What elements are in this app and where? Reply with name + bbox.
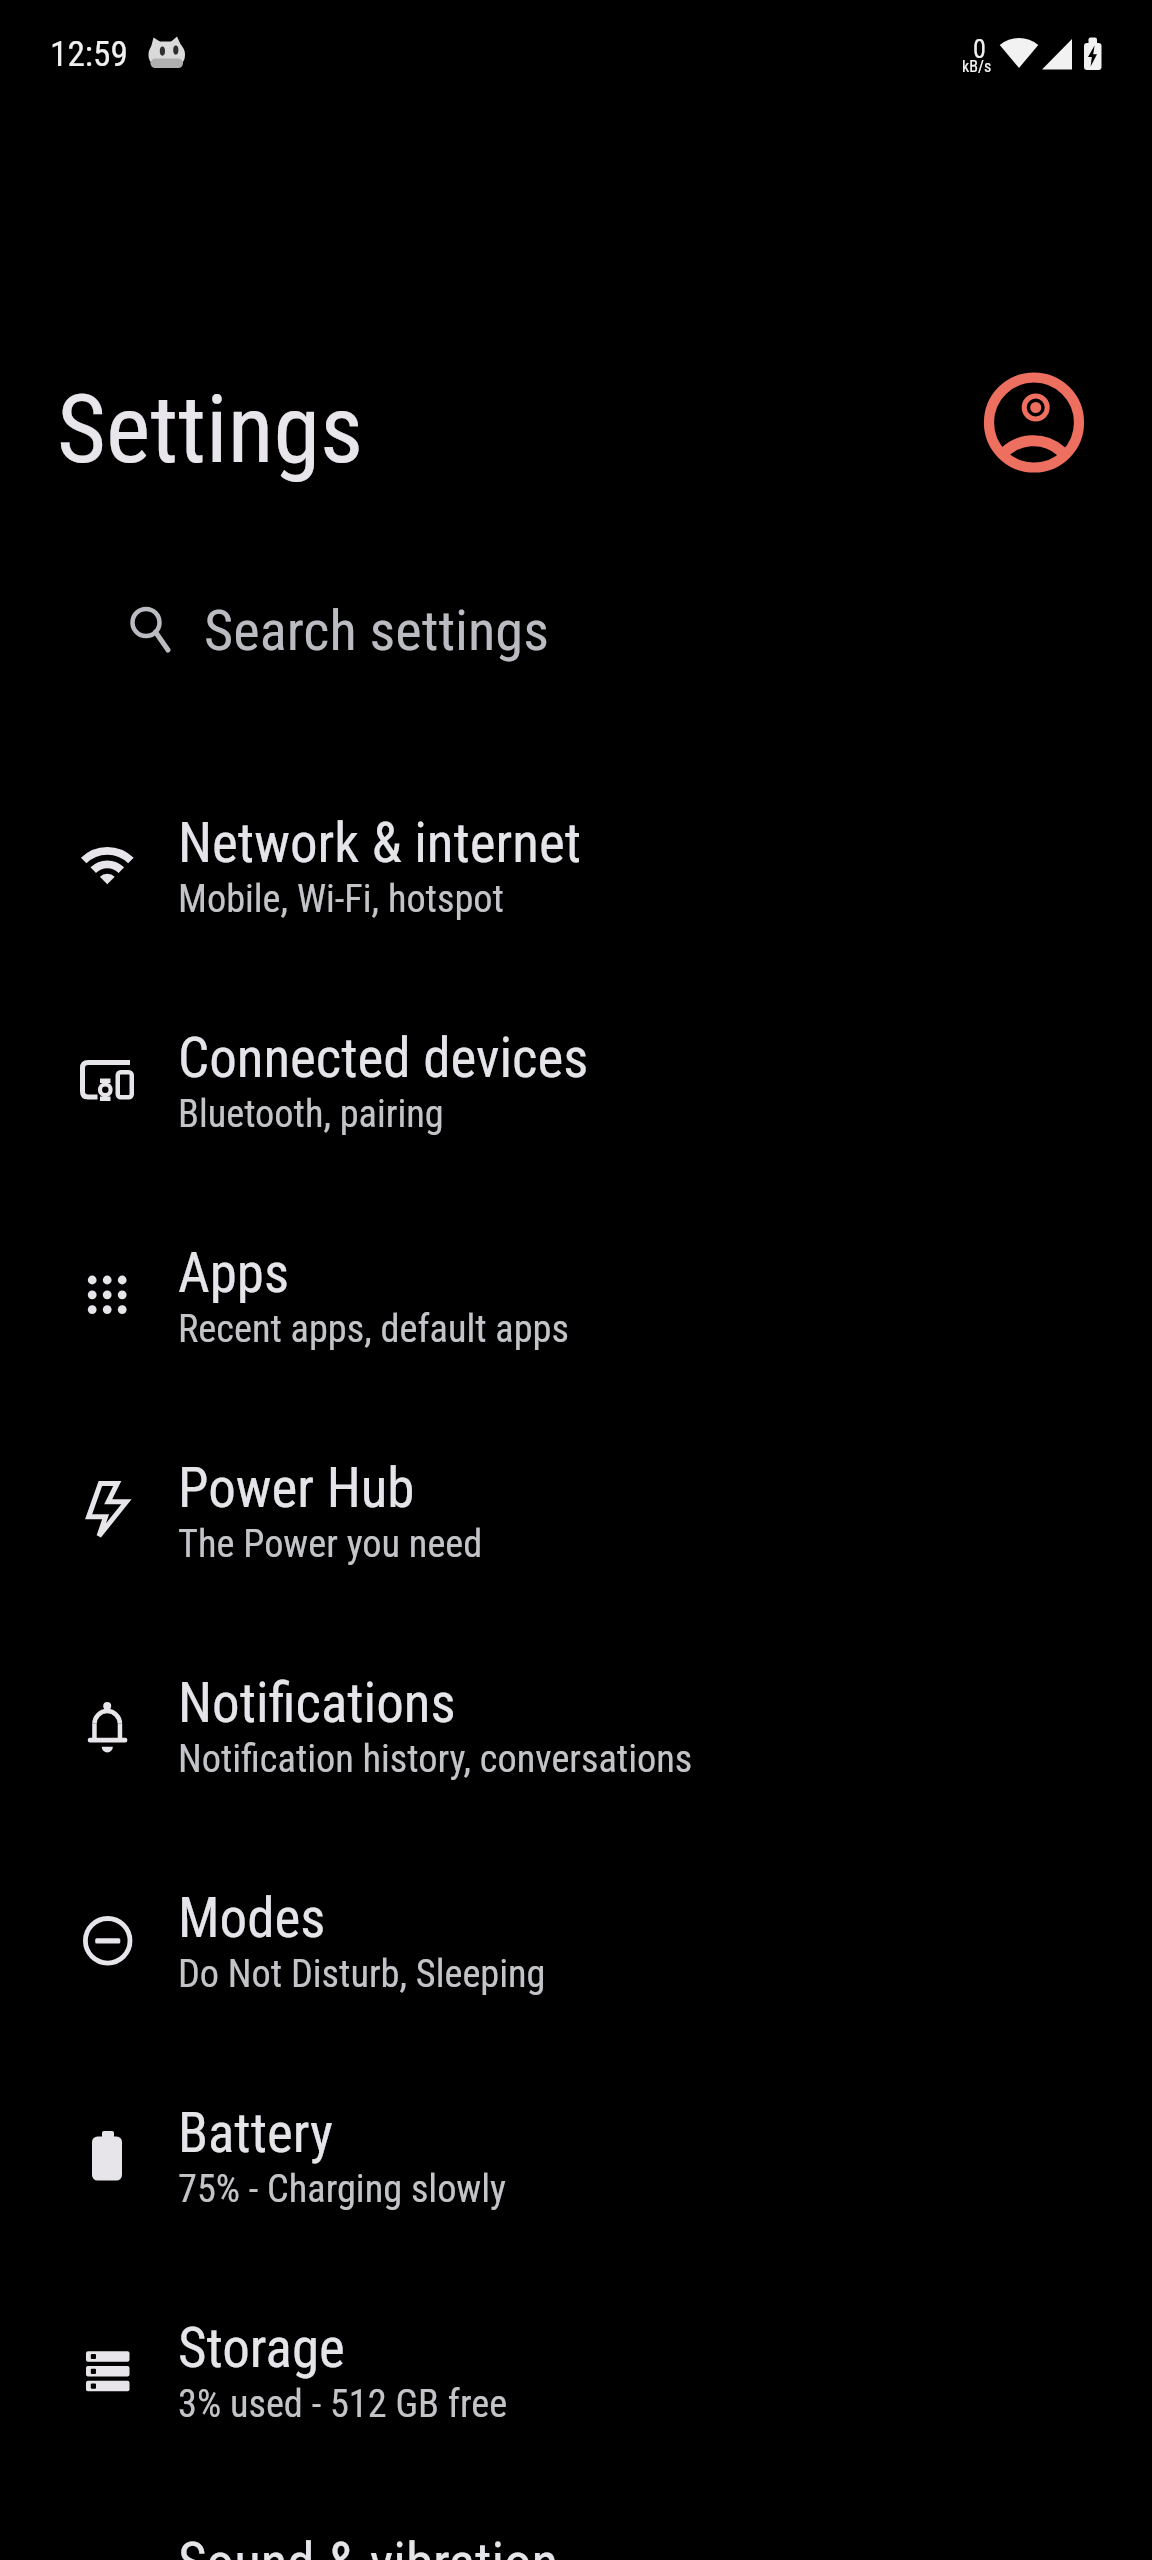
staticText: Modes	[178, 1886, 326, 1950]
staticText: Storage	[178, 2316, 345, 2380]
button[interactable]: Network & internet	[0, 760, 1152, 975]
staticText: Settings	[57, 374, 364, 485]
staticText: Mobile, Wi-Fi, hotspot	[178, 876, 504, 921]
button[interactable]	[980, 368, 1088, 476]
staticText: Notification history, conversations	[178, 1736, 693, 1781]
button[interactable]: Apps	[0, 1190, 1152, 1405]
staticText: Notifications	[178, 1671, 456, 1735]
staticText: Battery	[178, 2101, 333, 2165]
staticText: Network & internet	[178, 811, 581, 875]
button[interactable]: Notifications	[0, 1620, 1152, 1835]
button[interactable]: Storage	[0, 2265, 1152, 2480]
staticText: Connected devices	[178, 1026, 589, 1090]
button[interactable]: Connected devices	[0, 975, 1152, 1190]
button[interactable]: Power Hub	[0, 1405, 1152, 1620]
staticText: Bluetooth, pairing	[178, 1091, 444, 1136]
staticText: Power Hub	[178, 1456, 415, 1520]
staticText: 12:59	[50, 33, 128, 74]
button[interactable]: Battery	[0, 2050, 1152, 2265]
button[interactable]: Sound & vibration	[0, 2480, 1152, 2560]
staticText: Do Not Disturb, Sleeping	[178, 1951, 546, 1996]
staticText: Recent apps, default apps	[178, 1306, 569, 1351]
button[interactable]: Modes	[0, 1835, 1152, 2050]
staticText: 75% - Charging slowly	[178, 2166, 506, 2211]
staticText: kB/s	[962, 57, 992, 76]
staticText: 0	[973, 34, 986, 64]
staticText: The Power you need	[178, 1521, 483, 1566]
button[interactable]: Search settings	[100, 570, 1052, 686]
staticText: 3% used - 512 GB free	[178, 2381, 508, 2426]
staticText: Search settings	[204, 598, 549, 664]
staticText: Apps	[178, 1241, 290, 1305]
staticText: Sound & vibration	[178, 2531, 559, 2560]
